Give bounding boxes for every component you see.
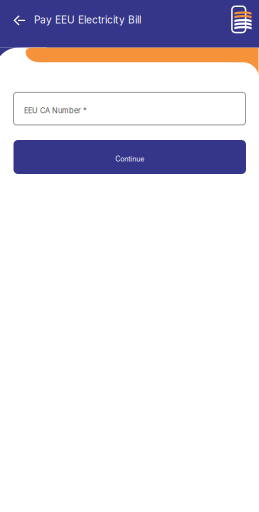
staticText: EEU CA Number * [24,106,87,115]
staticText: Pay EEU Electricity Bill [34,14,141,26]
button[interactable]: Continue [13,140,246,174]
staticText: Continue [115,155,144,163]
button[interactable]: Back [5,5,33,35]
button[interactable]: Electricity bill [227,3,253,35]
